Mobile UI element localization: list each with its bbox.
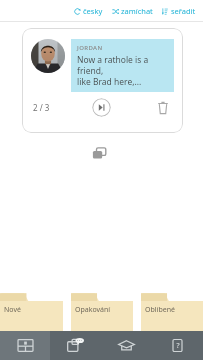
button[interactable]: Nové xyxy=(0,288,63,331)
button[interactable]: Dialogue xyxy=(50,331,101,360)
staticText: česky xyxy=(83,6,103,16)
staticText: Now a rathole is a friend, like Brad her… xyxy=(77,54,168,87)
button[interactable]: Cards xyxy=(88,143,110,165)
button[interactable]: Flashcards xyxy=(0,331,50,360)
staticText: seřadit xyxy=(171,6,196,16)
staticText: Opakování xyxy=(75,305,111,315)
button[interactable]: Delete xyxy=(154,99,172,117)
staticText: zamíchat xyxy=(121,6,153,16)
button[interactable]: zamíchat xyxy=(111,4,154,18)
staticText: JORDAN xyxy=(77,44,103,52)
button[interactable]: Play xyxy=(92,98,111,117)
button[interactable]: česky xyxy=(73,4,104,18)
staticText: Nové xyxy=(4,305,21,315)
button[interactable]: Oblíbené xyxy=(141,288,203,331)
button[interactable]: Learn xyxy=(101,331,152,360)
staticText: 2 / 3 xyxy=(33,102,50,113)
staticText: ? xyxy=(176,341,180,351)
button[interactable]: Quiz xyxy=(152,331,203,360)
staticText: Oblíbené xyxy=(145,305,175,315)
button[interactable]: seřadit xyxy=(161,4,197,18)
button[interactable]: JORDAN xyxy=(22,28,183,133)
button[interactable]: Opakování xyxy=(71,288,133,331)
